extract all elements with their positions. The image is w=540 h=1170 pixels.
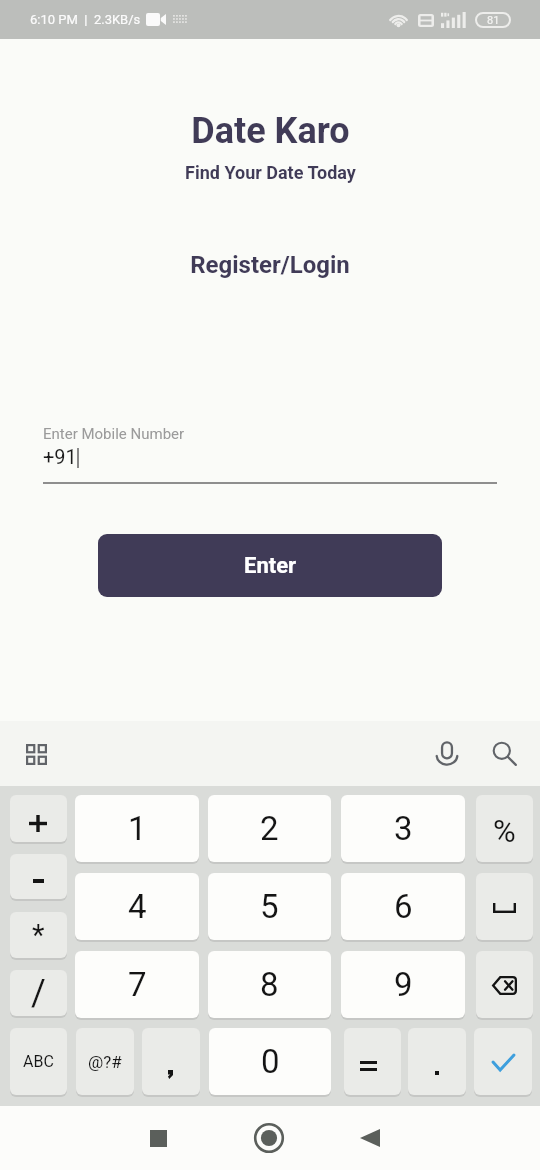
- button[interactable]: 2: [208, 795, 331, 862]
- button[interactable]: Back: [349, 1117, 391, 1159]
- staticText: Find Your Date Today: [185, 162, 356, 183]
- button[interactable]: 3: [341, 795, 465, 862]
- staticText: 9: [394, 965, 413, 1004]
- button[interactable]: /: [10, 970, 67, 1016]
- button[interactable]: %: [476, 795, 533, 862]
- button[interactable]: 4: [75, 873, 199, 940]
- button[interactable]: Search: [486, 735, 522, 771]
- button[interactable]: [408, 1028, 466, 1095]
- button[interactable]: ABC: [10, 1028, 67, 1095]
- staticText: Enter: [244, 553, 297, 579]
- button[interactable]: [474, 1028, 532, 1095]
- staticText: 6: [394, 887, 413, 926]
- button[interactable]: 0: [209, 1028, 331, 1095]
- staticText: Date Karo: [191, 110, 350, 152]
- button[interactable]: Home: [248, 1117, 290, 1159]
- staticText: Register/Login: [190, 251, 350, 279]
- button[interactable]: Enter: [98, 534, 442, 597]
- button[interactable]: 5: [208, 873, 331, 940]
- button[interactable]: Keyboard layouts: [19, 737, 53, 771]
- button[interactable]: *: [10, 912, 67, 958]
- button[interactable]: [142, 1028, 200, 1095]
- button[interactable]: [10, 854, 67, 899]
- staticText: 0: [261, 1042, 280, 1081]
- staticText: 7: [128, 965, 147, 1004]
- staticText: Enter Mobile Number: [43, 425, 185, 443]
- staticText: @?#: [88, 1052, 122, 1072]
- staticText: 4: [128, 887, 147, 926]
- staticText: *: [32, 918, 45, 952]
- button[interactable]: [344, 1028, 401, 1095]
- staticText: 81: [487, 14, 500, 27]
- staticText: 3: [394, 809, 413, 848]
- button[interactable]: 9: [341, 951, 465, 1018]
- staticText: /: [31, 972, 46, 1014]
- button[interactable]: @?#: [76, 1028, 134, 1095]
- button[interactable]: 1: [75, 795, 199, 862]
- button[interactable]: 6: [341, 873, 465, 940]
- staticText: 6:10 PM | 2.3KB/s: [30, 12, 141, 27]
- staticText: 5: [260, 887, 279, 926]
- staticText: 1: [128, 809, 147, 848]
- button[interactable]: [476, 873, 533, 940]
- button[interactable]: Voice input: [429, 735, 465, 771]
- staticText: 8: [260, 965, 279, 1004]
- staticText: +91: [43, 445, 77, 468]
- button[interactable]: 7: [75, 951, 199, 1018]
- button[interactable]: [10, 795, 67, 842]
- staticText: %: [493, 813, 516, 849]
- staticText: ABC: [23, 1052, 54, 1071]
- button[interactable]: Recent apps: [137, 1117, 179, 1159]
- staticText: 2: [260, 809, 279, 848]
- button[interactable]: [476, 951, 533, 1018]
- button[interactable]: 8: [208, 951, 331, 1018]
